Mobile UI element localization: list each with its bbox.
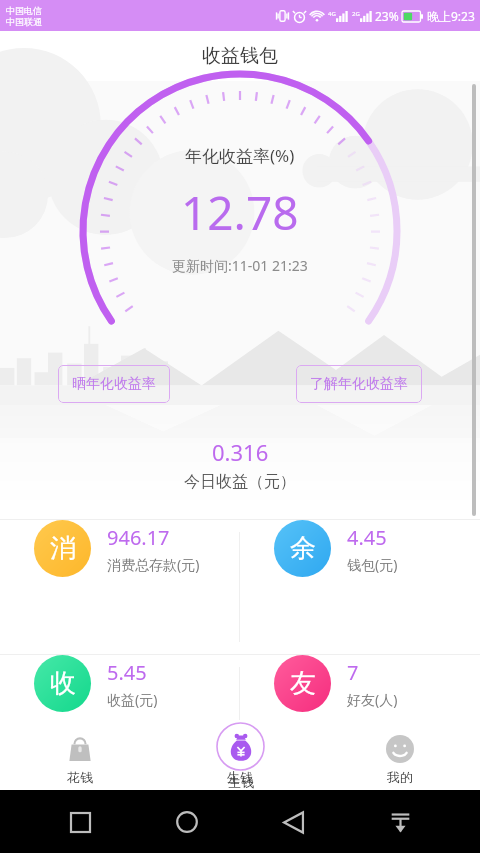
staticText: 4G: [328, 10, 336, 18]
button[interactable]: 花钱: [0, 725, 160, 785]
button[interactable]: 我的: [320, 725, 480, 785]
button[interactable]: 晒年化收益率: [58, 365, 170, 403]
staticText: 生钱: [228, 774, 254, 790]
button[interactable]: Home: [167, 802, 207, 842]
staticText: 余: [290, 532, 316, 565]
staticText: 7: [347, 659, 359, 686]
staticText: 中国联通: [6, 16, 42, 27]
staticText: 生钱: [227, 769, 253, 785]
staticText: 花钱: [67, 769, 93, 785]
staticText: 消: [50, 532, 76, 565]
staticText: 晚上9:23: [427, 8, 475, 24]
staticText: 12.78: [181, 181, 299, 244]
staticText: 收益钱包: [202, 44, 278, 68]
button[interactable]: 了解年化收益率: [296, 365, 422, 403]
staticText: 好友(人): [347, 690, 398, 709]
staticText: 收益(元): [107, 690, 158, 709]
staticText: 946.17: [107, 524, 170, 551]
button[interactable]: 生钱: [216, 722, 265, 790]
staticText: 中国电信: [6, 5, 42, 16]
other: 花钱: [66, 735, 94, 763]
button[interactable]: 生钱: [160, 725, 320, 785]
staticText: 更新时间:11-01 21:23: [172, 256, 308, 275]
staticText: 23%: [375, 8, 399, 24]
staticText: 友: [290, 667, 316, 700]
other: 我的: [386, 735, 414, 763]
staticText: 消费总存款(元): [107, 555, 200, 574]
staticText: 晒年化收益率: [72, 375, 156, 393]
button[interactable]: Recents: [60, 802, 100, 842]
staticText: 5.45: [107, 659, 147, 686]
staticText: 我的: [387, 769, 413, 785]
staticText: 今日收益（元）: [184, 472, 296, 492]
staticText: 了解年化收益率: [310, 375, 408, 393]
staticText: 收: [50, 667, 76, 700]
button[interactable]: 消: [0, 520, 239, 577]
staticText: 钱包(元): [347, 555, 398, 574]
button[interactable]: 收: [0, 655, 239, 712]
staticText: 0.316: [212, 437, 269, 467]
staticText: 4.45: [347, 524, 387, 551]
button[interactable]: Back: [273, 802, 313, 842]
button[interactable]: 友: [240, 655, 480, 712]
button[interactable]: 余: [240, 520, 480, 577]
button[interactable]: Hide navigation bar: [380, 802, 420, 842]
staticText: 2G: [352, 10, 360, 18]
staticText: 年化收益率(%): [185, 144, 295, 167]
